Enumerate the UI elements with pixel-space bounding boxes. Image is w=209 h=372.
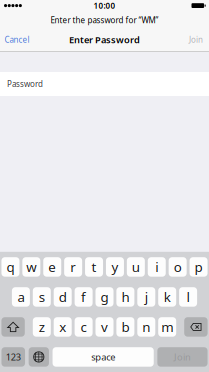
- button[interactable]: j: [137, 287, 155, 307]
- staticText: Cancel: [4, 34, 29, 45]
- button[interactable]: p: [190, 257, 208, 277]
- button[interactable]: Delete: [184, 317, 208, 337]
- staticText: Password: [7, 79, 43, 89]
- staticText: g: [100, 288, 108, 306]
- staticText: r: [70, 258, 76, 276]
- staticText: Join: [174, 351, 191, 363]
- button[interactable]: a: [12, 287, 30, 307]
- staticText: 123: [6, 351, 21, 363]
- button[interactable]: q: [1, 257, 19, 277]
- staticText: space: [91, 351, 115, 363]
- button[interactable]: c: [75, 317, 93, 337]
- staticText: Enter Password: [69, 33, 140, 46]
- button[interactable]: n: [137, 317, 155, 337]
- staticText: l: [187, 288, 190, 306]
- staticText: k: [164, 288, 171, 306]
- staticText: Enter the password for “WM”: [50, 15, 158, 25]
- staticText: t: [91, 258, 96, 276]
- button[interactable]: v: [95, 317, 113, 337]
- staticText: n: [142, 318, 150, 336]
- button[interactable]: h: [116, 287, 134, 307]
- button[interactable]: r: [64, 257, 82, 277]
- staticText: d: [59, 288, 67, 306]
- staticText: w: [26, 258, 36, 276]
- button[interactable]: Shift: [1, 317, 25, 337]
- staticText: b: [121, 318, 129, 336]
- button[interactable]: g: [95, 287, 113, 307]
- button[interactable]: 123: [1, 347, 25, 367]
- button[interactable]: i: [148, 257, 166, 277]
- button[interactable]: u: [127, 257, 145, 277]
- button[interactable]: l: [179, 287, 197, 307]
- staticText: p: [195, 258, 203, 276]
- staticText: q: [6, 258, 14, 276]
- button[interactable]: k: [158, 287, 176, 307]
- staticText: x: [59, 318, 66, 336]
- staticText: h: [121, 288, 129, 306]
- button[interactable]: w: [22, 257, 40, 277]
- staticText: v: [101, 318, 108, 336]
- staticText: m: [161, 318, 173, 336]
- staticText: 10:00: [93, 0, 115, 11]
- staticText: Join: [189, 34, 203, 45]
- staticText: a: [17, 288, 24, 306]
- button[interactable]: z: [33, 317, 51, 337]
- button[interactable]: f: [75, 287, 93, 307]
- button[interactable]: m: [158, 317, 176, 337]
- button[interactable]: x: [54, 317, 72, 337]
- button[interactable]: Join: [157, 347, 207, 367]
- button[interactable]: b: [116, 317, 134, 337]
- staticText: c: [81, 318, 87, 336]
- button[interactable]: d: [54, 287, 72, 307]
- button[interactable]: s: [33, 287, 51, 307]
- button[interactable]: Next keyboard: [29, 347, 49, 367]
- button[interactable]: Cancel: [0, 29, 34, 51]
- button[interactable]: Password: [0, 72, 209, 96]
- button[interactable]: space: [52, 347, 154, 367]
- staticText: z: [39, 318, 45, 336]
- staticText: u: [132, 258, 140, 276]
- button[interactable]: Join: [184, 29, 209, 51]
- staticText: e: [48, 258, 56, 276]
- staticText: f: [81, 288, 86, 306]
- button[interactable]: t: [85, 257, 103, 277]
- staticText: i: [155, 258, 158, 276]
- staticText: j: [145, 288, 148, 306]
- staticText: s: [39, 288, 45, 306]
- staticText: o: [174, 258, 182, 276]
- button[interactable]: y: [106, 257, 124, 277]
- staticText: y: [111, 258, 118, 276]
- button[interactable]: o: [169, 257, 187, 277]
- button[interactable]: e: [43, 257, 61, 277]
